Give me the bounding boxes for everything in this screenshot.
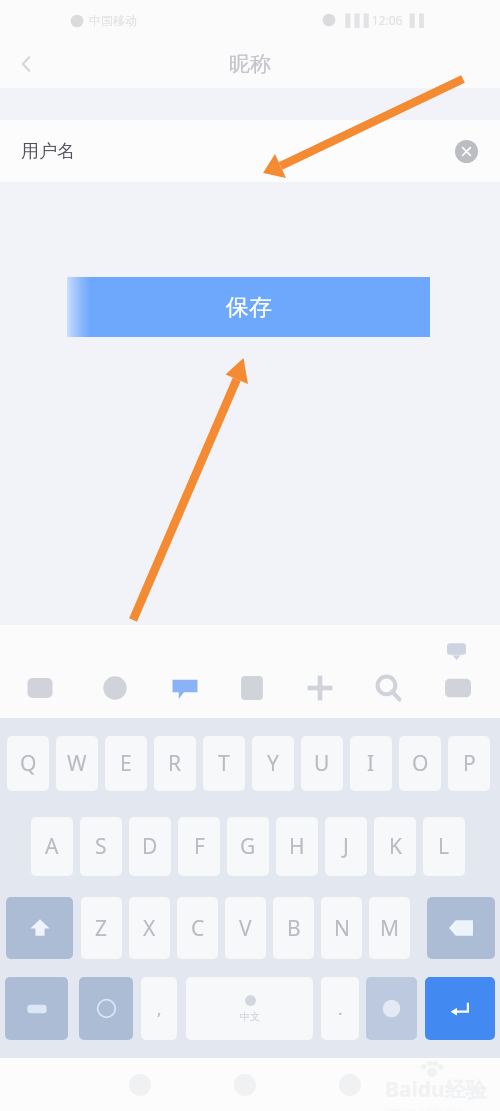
staticText: Baidu经验: [385, 1075, 487, 1104]
button[interactable]: A: [31, 817, 73, 876]
staticText: D: [142, 832, 158, 861]
button[interactable]: Switch input language: [79, 977, 133, 1040]
staticText: B: [287, 914, 301, 943]
staticText: W: [67, 749, 87, 778]
button[interactable]: D: [129, 817, 171, 876]
staticText: ▐▐▐ 12:06 ▐▐: [341, 12, 425, 28]
button[interactable]: M: [369, 897, 410, 959]
button[interactable]: Y: [252, 736, 294, 791]
button[interactable]: Settings: [98, 671, 132, 705]
staticText: Z: [95, 914, 108, 943]
staticText: .: [338, 997, 343, 1020]
button[interactable]: Emoji: [168, 671, 202, 705]
staticText: O: [412, 749, 429, 778]
button[interactable]: L: [423, 817, 465, 876]
staticText: E: [120, 749, 132, 778]
button[interactable]: I: [350, 736, 392, 791]
button[interactable]: J: [325, 817, 367, 876]
button[interactable]: C: [177, 897, 218, 959]
button[interactable]: Backspace: [427, 897, 495, 959]
staticText: S: [95, 832, 107, 861]
button[interactable]: G: [227, 817, 269, 876]
staticText: 保存: [226, 293, 272, 322]
staticText: T: [218, 749, 230, 778]
button[interactable]: B: [273, 897, 314, 959]
button[interactable]: Shift: [6, 897, 73, 959]
staticText: P: [463, 749, 476, 778]
button[interactable]: Back: [8, 46, 44, 82]
button[interactable]: N: [321, 897, 362, 959]
button[interactable]: X: [129, 897, 170, 959]
button[interactable]: K: [374, 817, 416, 876]
staticText: K: [389, 832, 402, 861]
button[interactable]: E: [105, 736, 147, 791]
staticText: C: [191, 914, 205, 943]
button[interactable]: F: [178, 817, 220, 876]
button[interactable]: Keyboard layout: [441, 671, 475, 705]
staticText: I: [367, 749, 375, 778]
staticText: A: [45, 832, 59, 861]
button[interactable]: H: [276, 817, 318, 876]
staticText: N: [334, 914, 350, 943]
button[interactable]: U: [301, 736, 343, 791]
button[interactable]: T: [203, 736, 245, 791]
staticText: L: [438, 832, 450, 861]
button[interactable]: Voice input: [23, 671, 57, 705]
button[interactable]: P: [448, 736, 490, 791]
staticText: 中文: [240, 1010, 260, 1023]
staticText: Q: [20, 749, 37, 778]
button[interactable]: Home: [223, 1063, 267, 1107]
button[interactable]: Space: [186, 977, 313, 1040]
staticText: F: [194, 832, 205, 861]
button[interactable]: Clipboard: [235, 671, 269, 705]
button[interactable]: Q: [7, 736, 49, 791]
button[interactable]: Translate: [303, 671, 337, 705]
button[interactable]: R: [154, 736, 196, 791]
button[interactable]: Z: [81, 897, 122, 959]
staticText: 用户名: [21, 140, 75, 163]
staticText: Y: [267, 749, 279, 778]
button[interactable]: Clear text: [455, 140, 478, 163]
button[interactable]: 保存: [67, 277, 430, 337]
staticText: 昵称: [229, 51, 271, 77]
button[interactable]: S: [80, 817, 122, 876]
button[interactable]: Hide keyboard: [444, 638, 468, 662]
staticText: X: [143, 914, 156, 943]
button[interactable]: V: [225, 897, 266, 959]
button[interactable]: Back: [118, 1063, 162, 1107]
button[interactable]: Recents: [328, 1063, 372, 1107]
staticText: M: [380, 914, 400, 943]
staticText: G: [240, 832, 256, 861]
staticText: R: [168, 749, 182, 778]
button[interactable]: Search: [371, 671, 405, 705]
staticText: V: [239, 914, 252, 943]
staticText: H: [289, 832, 305, 861]
button[interactable]: Comma: [141, 977, 177, 1040]
button[interactable]: Symbols: [5, 977, 68, 1040]
staticText: ,: [157, 997, 162, 1020]
button[interactable]: O: [399, 736, 441, 791]
button[interactable]: Enter: [425, 977, 495, 1040]
button[interactable]: W: [56, 736, 98, 791]
staticText: 中国移动: [89, 13, 137, 28]
button[interactable]: Emoji: [366, 977, 417, 1040]
staticText: J: [343, 832, 349, 861]
staticText: U: [314, 749, 330, 778]
